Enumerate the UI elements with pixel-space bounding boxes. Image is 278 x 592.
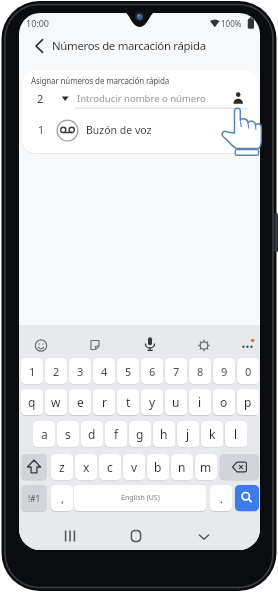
staticText: j xyxy=(186,426,190,442)
staticText: 6 xyxy=(149,364,156,379)
staticText: Introducir nombre o número xyxy=(77,92,206,105)
staticText: u xyxy=(172,394,180,410)
button[interactable] xyxy=(240,337,256,352)
staticText: 2 xyxy=(53,364,60,379)
staticText: 9 xyxy=(221,364,228,379)
button[interactable]: 4 xyxy=(93,358,115,384)
staticText: t xyxy=(126,394,131,410)
staticText: 3 xyxy=(77,364,84,379)
button[interactable]: a xyxy=(33,421,55,447)
staticText: e xyxy=(77,394,84,410)
staticText: 1 xyxy=(29,364,36,379)
button[interactable] xyxy=(22,116,258,148)
staticText: d xyxy=(88,426,96,442)
staticText: 5 xyxy=(125,364,132,379)
staticText: 2 xyxy=(37,91,44,106)
staticText: c xyxy=(107,459,113,475)
button[interactable] xyxy=(34,338,48,353)
button[interactable] xyxy=(60,526,80,546)
staticText: q xyxy=(28,394,36,410)
staticText: 10:00 xyxy=(26,17,50,29)
button[interactable]: 7 xyxy=(165,358,187,384)
button[interactable]: e xyxy=(69,389,91,415)
staticText: h xyxy=(160,426,168,442)
button[interactable]: 5 xyxy=(117,358,139,384)
button[interactable]: o xyxy=(213,389,235,415)
staticText: 8 xyxy=(197,364,204,379)
button[interactable]: u xyxy=(165,389,187,415)
staticText: Buzón de voz xyxy=(86,123,152,137)
button[interactable]: m xyxy=(195,454,217,480)
button[interactable]: 3 xyxy=(69,358,91,384)
button[interactable]: v xyxy=(123,454,145,480)
staticText: x xyxy=(83,459,90,475)
button[interactable]: l xyxy=(225,421,247,447)
button[interactable] xyxy=(197,338,211,353)
button[interactable] xyxy=(22,86,258,114)
staticText: a xyxy=(41,426,48,442)
button[interactable] xyxy=(88,338,102,353)
staticText: English (US) xyxy=(121,493,160,503)
button[interactable]: w xyxy=(45,389,67,415)
staticText: n xyxy=(178,459,186,475)
staticText: g xyxy=(136,426,144,442)
button[interactable]: . xyxy=(210,485,232,511)
staticText: !#1 xyxy=(28,493,41,504)
staticText: p xyxy=(244,394,252,410)
button[interactable]: b xyxy=(147,454,169,480)
button[interactable]: 1 xyxy=(21,358,43,384)
button[interactable]: k xyxy=(201,421,223,447)
staticText: Asignar números de marcación rápida xyxy=(31,75,170,86)
button[interactable]: 2 xyxy=(45,358,67,384)
button[interactable] xyxy=(31,37,49,55)
button[interactable]: p xyxy=(237,389,259,415)
staticText: . xyxy=(220,491,223,506)
staticText: 4 xyxy=(101,364,108,379)
staticText: r xyxy=(102,394,107,410)
button[interactable]: x xyxy=(75,454,97,480)
button[interactable]: 6 xyxy=(141,358,163,384)
staticText: v xyxy=(131,459,138,475)
button[interactable] xyxy=(194,527,214,547)
button[interactable] xyxy=(220,454,259,480)
staticText: y xyxy=(149,394,156,410)
button[interactable]: c xyxy=(99,454,121,480)
button[interactable]: 9 xyxy=(213,358,235,384)
button[interactable]: f xyxy=(105,421,127,447)
staticText: o xyxy=(220,394,228,410)
button[interactable]: !#1 xyxy=(21,485,47,511)
button[interactable] xyxy=(142,336,158,354)
button[interactable]: r xyxy=(93,389,115,415)
staticText: m xyxy=(200,459,212,475)
button[interactable]: , xyxy=(51,485,73,511)
staticText: z xyxy=(59,459,65,475)
button[interactable]: s xyxy=(57,421,79,447)
button[interactable]: i xyxy=(189,389,211,415)
staticText: 7 xyxy=(173,364,180,379)
staticText: w xyxy=(51,394,61,410)
button[interactable]: q xyxy=(21,389,43,415)
button[interactable]: z xyxy=(51,454,73,480)
button[interactable]: d xyxy=(81,421,103,447)
button[interactable]: 0 xyxy=(237,358,259,384)
staticText: Números de marcación rápida xyxy=(52,38,206,54)
staticText: l xyxy=(234,426,238,442)
button[interactable]: n xyxy=(171,454,193,480)
button[interactable] xyxy=(235,485,259,511)
button[interactable] xyxy=(126,526,146,546)
staticText: 0 xyxy=(245,364,252,379)
staticText: s xyxy=(65,426,71,442)
staticText: 1 xyxy=(38,123,45,137)
button[interactable] xyxy=(21,454,47,480)
staticText: i xyxy=(198,394,202,410)
staticText: k xyxy=(209,426,216,442)
button[interactable]: English (US) xyxy=(74,485,206,511)
button[interactable]: t xyxy=(117,389,139,415)
button[interactable]: 8 xyxy=(189,358,211,384)
button[interactable]: g xyxy=(129,421,151,447)
staticText: b xyxy=(154,459,162,475)
button[interactable]: h xyxy=(153,421,175,447)
button[interactable]: y xyxy=(141,389,163,415)
button[interactable]: j xyxy=(177,421,199,447)
staticText: f xyxy=(114,426,119,442)
